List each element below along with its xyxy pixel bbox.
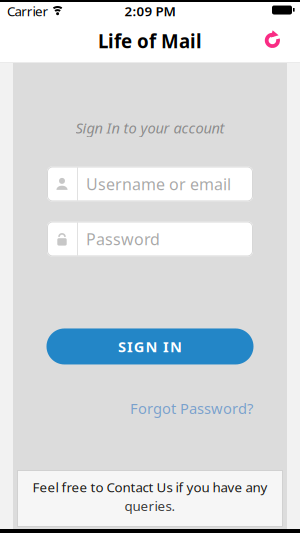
staticText: Forgot Password? (130, 398, 253, 418)
staticText: Username or email (86, 173, 231, 195)
staticText: 2:09 PM (124, 2, 175, 20)
staticText: queries. (124, 497, 175, 515)
button[interactable]: Feel free to Contact Us if you have any (17, 470, 283, 527)
button[interactable]: Password (47, 221, 253, 256)
staticText: Carrier (7, 2, 49, 20)
staticText: Password (86, 228, 160, 250)
staticText: Sign In to your account (75, 118, 224, 137)
button[interactable]: Forgot Password? (130, 398, 253, 418)
button[interactable]: Username or email (47, 166, 253, 201)
button[interactable]: SIGN IN (46, 328, 253, 364)
staticText: Life of Mail (98, 29, 202, 53)
button[interactable]: Refresh (264, 32, 300, 50)
staticText: Feel free to Contact Us if you have any (32, 478, 267, 496)
staticText: SIGN IN (118, 337, 182, 356)
